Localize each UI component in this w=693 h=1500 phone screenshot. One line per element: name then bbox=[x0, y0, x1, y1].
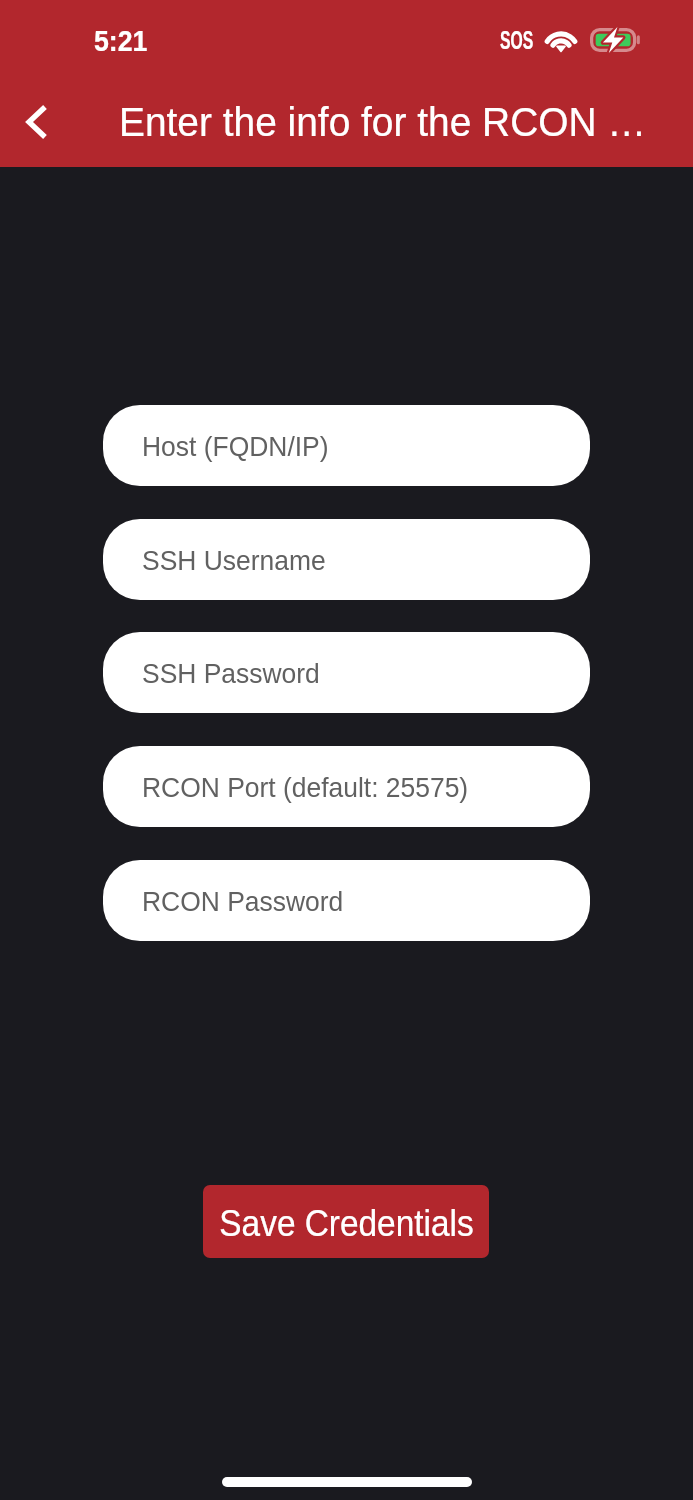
staticText: Enter the info for the RCON … bbox=[119, 100, 647, 145]
staticText: SSH Username bbox=[142, 545, 326, 576]
button[interactable]: RCON Port (default: 25575) bbox=[103, 746, 590, 827]
staticText: SOS bbox=[500, 26, 533, 54]
staticText: 5:21 bbox=[94, 24, 148, 58]
staticText: RCON Password bbox=[142, 886, 344, 917]
button[interactable]: RCON Password bbox=[103, 860, 590, 941]
staticText: Host (FQDN/IP) bbox=[142, 431, 329, 462]
button[interactable]: SSH Password bbox=[103, 632, 590, 713]
staticText: Save Credentials bbox=[219, 1203, 474, 1244]
button[interactable]: SSH Username bbox=[103, 519, 590, 600]
button[interactable]: Save Credentials bbox=[203, 1185, 489, 1258]
staticText: SSH Password bbox=[142, 658, 320, 689]
staticText: RCON Port (default: 25575) bbox=[142, 772, 468, 803]
button[interactable]: Host (FQDN/IP) bbox=[103, 405, 590, 486]
button[interactable]: Back bbox=[0, 78, 72, 166]
